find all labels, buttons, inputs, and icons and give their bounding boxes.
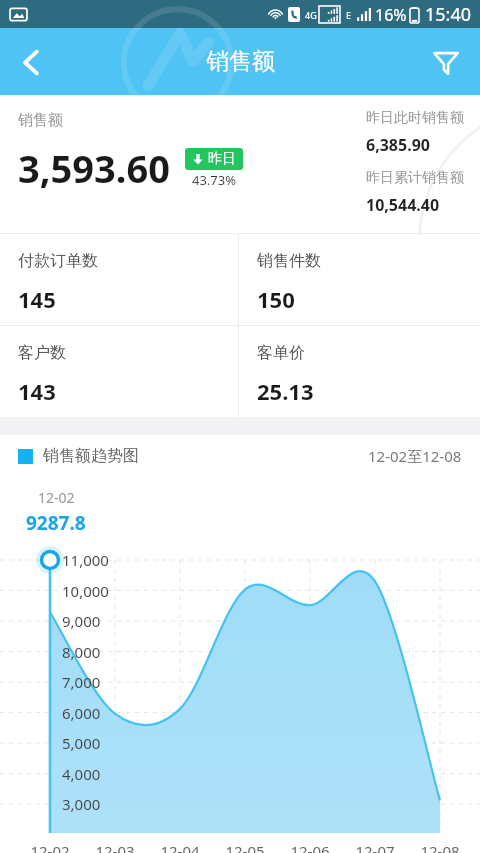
- staticText: 11,000: [62, 550, 109, 570]
- staticText: 3,000: [62, 794, 101, 814]
- staticText: 12-04: [152, 841, 208, 853]
- staticText: 客户数: [18, 343, 66, 363]
- staticText: 7,000: [62, 672, 101, 692]
- button[interactable]: 客户数: [0, 326, 238, 417]
- staticText: 5,000: [62, 733, 101, 753]
- staticText: 25.13: [257, 376, 314, 406]
- staticText: 10,000: [62, 581, 109, 601]
- staticText: 6,385.90: [366, 134, 430, 156]
- button[interactable]: 销售额趋势图: [18, 435, 462, 477]
- staticText: 12-06: [282, 841, 338, 853]
- staticText: 12-08: [412, 841, 468, 853]
- staticText: 3,593.60: [18, 142, 170, 194]
- staticText: 145: [18, 284, 56, 314]
- staticText: 9,000: [62, 611, 101, 631]
- staticText: 12-03: [87, 841, 143, 853]
- button[interactable]: 销售件数: [239, 234, 480, 325]
- staticText: E: [346, 9, 352, 21]
- staticText: 10,544.40: [366, 194, 440, 216]
- staticText: 150: [257, 284, 295, 314]
- staticText: 8,000: [62, 642, 101, 662]
- staticText: 销售额: [18, 111, 63, 130]
- staticText: 昨日累计销售额: [366, 169, 464, 187]
- button[interactable]: Filter: [420, 36, 472, 88]
- staticText: 12-07: [347, 841, 403, 853]
- staticText: 12-02至12-08: [368, 446, 462, 466]
- staticText: 12-02: [38, 488, 75, 507]
- staticText: 6,000: [62, 703, 101, 723]
- button[interactable]: 客单价: [239, 326, 480, 417]
- staticText: 4,000: [62, 764, 101, 784]
- staticText: 12-05: [217, 841, 273, 853]
- staticText: 销售件数: [257, 251, 321, 271]
- staticText: 15:40: [425, 2, 472, 27]
- staticText: 143: [18, 376, 56, 406]
- staticText: 43.73%: [192, 171, 237, 189]
- staticText: 12-02: [22, 841, 78, 853]
- staticText: 客单价: [257, 343, 305, 363]
- staticText: 16%: [375, 4, 407, 26]
- staticText: 9287.8: [26, 510, 86, 536]
- staticText: 昨日: [208, 150, 236, 168]
- staticText: 4G: [305, 9, 317, 21]
- button[interactable]: 付款订单数: [0, 234, 238, 325]
- staticText: 付款订单数: [18, 251, 98, 271]
- staticText: 昨日此时销售额: [366, 109, 464, 127]
- button[interactable]: Back: [4, 35, 58, 89]
- staticText: 销售额趋势图: [43, 446, 139, 466]
- staticText: 销售额: [206, 47, 275, 76]
